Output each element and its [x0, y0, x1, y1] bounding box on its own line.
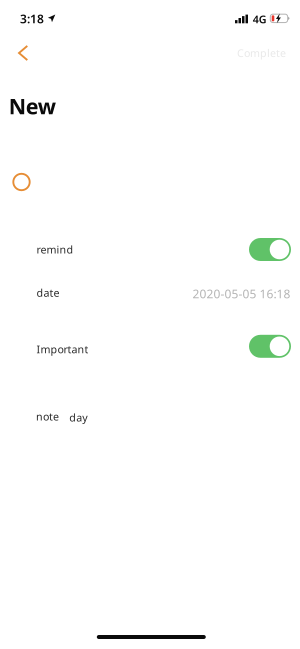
button[interactable]: Important — [249, 335, 291, 358]
staticText: 3:18 — [20, 11, 44, 27]
staticText: 4G — [253, 12, 267, 26]
staticText: note — [36, 409, 59, 424]
button[interactable]: Back — [0, 34, 44, 72]
staticText: Complete — [237, 46, 286, 60]
staticText: Important — [36, 342, 88, 356]
button[interactable]: Complete — [222, 35, 297, 71]
staticText: 2020-05-05 16:18 — [192, 286, 290, 302]
staticText: day — [69, 410, 87, 425]
button[interactable]: Mark as complete — [4, 165, 39, 199]
staticText: New — [9, 92, 56, 120]
button[interactable]: Remind — [249, 238, 291, 261]
staticText: date — [36, 286, 59, 300]
staticText: remind — [36, 242, 73, 256]
